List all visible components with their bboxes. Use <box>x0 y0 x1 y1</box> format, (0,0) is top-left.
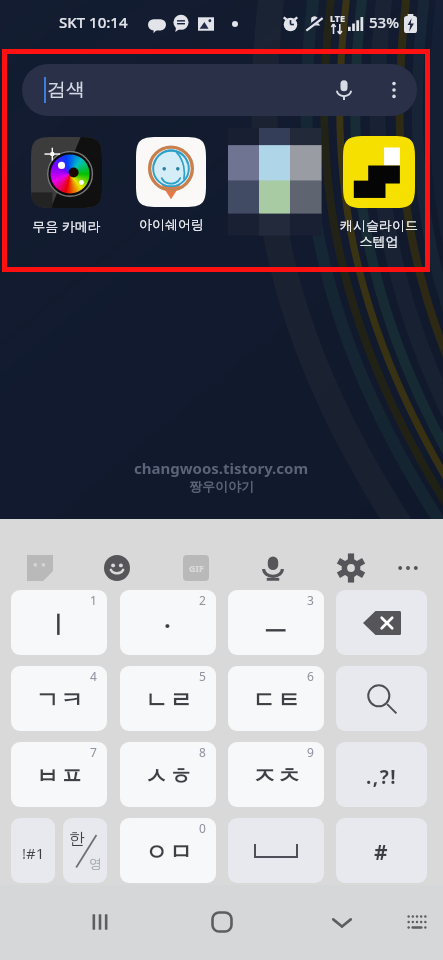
staticText: 8 <box>199 744 206 760</box>
staticText: 6 <box>307 668 314 684</box>
staticText: 캐시슬라이드 스텝업 <box>340 217 418 250</box>
button[interactable]: App <box>228 128 321 235</box>
staticText: ㅣ <box>46 610 72 640</box>
staticText: 53% <box>369 12 399 32</box>
staticText: 짱우이야기 <box>189 478 254 494</box>
button[interactable]: · <box>120 590 216 655</box>
button[interactable]: hanyeong <box>63 818 107 883</box>
staticText: 1 <box>90 592 97 608</box>
button[interactable]: Emoji <box>95 546 139 590</box>
button[interactable]: ㄱㅋ <box>11 666 107 731</box>
button[interactable]: space <box>228 818 324 883</box>
staticText: 검색 <box>47 78 85 102</box>
button[interactable]: Voice search <box>324 70 364 110</box>
button[interactable]: # <box>336 818 427 883</box>
staticText: ㅇㅁ <box>144 838 193 867</box>
staticText: 무음 카메라 <box>32 217 101 235</box>
button[interactable]: Sticker <box>18 546 62 590</box>
button[interactable]: Hide keyboard <box>395 900 439 944</box>
staticText: 3 <box>307 592 314 608</box>
staticText: 2 <box>199 592 206 608</box>
staticText: 9 <box>307 744 314 760</box>
button[interactable]: 아이쉐어링 <box>116 137 226 232</box>
button[interactable]: backspace <box>336 590 427 655</box>
staticText: ㅂㅍ <box>35 762 84 791</box>
button[interactable]: search <box>336 666 427 731</box>
button[interactable]: ㅅㅎ <box>120 742 216 807</box>
button[interactable]: ㅂㅍ <box>11 742 107 807</box>
staticText: ㄴㄹ <box>144 686 193 715</box>
button[interactable]: ㅡ <box>228 590 324 655</box>
staticText: GIF <box>189 562 204 574</box>
button[interactable]: ㅣ <box>11 590 107 655</box>
button[interactable]: !#1 <box>11 818 55 883</box>
button[interactable]: More options <box>374 70 414 110</box>
button[interactable]: 캐시슬라이드 스텝업 <box>323 136 435 250</box>
button[interactable]: Home <box>200 900 244 944</box>
staticText: !#1 <box>22 843 45 863</box>
staticText: · <box>164 608 173 641</box>
button[interactable]: Settings <box>329 546 373 590</box>
staticText: 7 <box>90 744 97 760</box>
staticText: ㄷㅌ <box>252 686 301 715</box>
staticText: 0 <box>199 820 206 836</box>
staticText: ㅡ <box>263 610 289 640</box>
staticText: 4 <box>90 668 97 684</box>
button[interactable]: Back <box>320 900 364 944</box>
staticText: 아이쉐어링 <box>139 216 204 232</box>
button[interactable]: 검색 <box>22 64 417 116</box>
button[interactable]: ㄴㄹ <box>120 666 216 731</box>
staticText: ㅅㅎ <box>144 762 193 791</box>
staticText: 5 <box>199 668 206 684</box>
button[interactable]: 무음 카메라 <box>11 137 122 235</box>
button[interactable]: GIF <box>174 546 218 590</box>
button[interactable]: ㅇㅁ <box>120 818 216 883</box>
button[interactable]: More options <box>386 546 430 590</box>
button[interactable]: Voice input <box>251 546 295 590</box>
staticText: ㅈㅊ <box>252 762 301 791</box>
button[interactable]: ㅈㅊ <box>228 742 324 807</box>
staticText: LTE <box>330 12 346 24</box>
button[interactable]: Recents <box>78 900 122 944</box>
staticText: changwoos.tistory.com <box>134 458 309 478</box>
staticText: 한 <box>69 829 85 849</box>
staticText: ㄱㅋ <box>35 686 84 715</box>
staticText: SKT 10:14 <box>59 12 128 32</box>
button[interactable]: ㄷㅌ <box>228 666 324 731</box>
staticText: .,?! <box>366 764 398 790</box>
staticText: # <box>374 838 390 867</box>
staticText: 영 <box>89 855 102 871</box>
button[interactable]: .,?! <box>336 742 427 807</box>
